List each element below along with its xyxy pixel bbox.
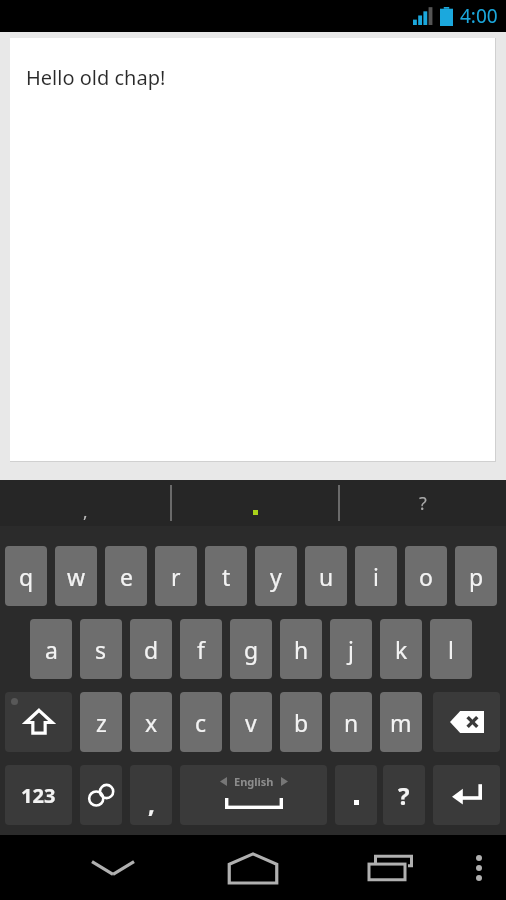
button[interactable]: ? — [383, 765, 425, 825]
button[interactable]: w — [55, 546, 97, 606]
button[interactable]: x — [130, 692, 172, 752]
staticText: k — [395, 634, 408, 665]
button[interactable]: h — [280, 619, 322, 679]
button[interactable]: q — [5, 546, 47, 606]
staticText: m — [390, 707, 412, 738]
staticText: h — [294, 634, 309, 665]
button[interactable]: j — [330, 619, 372, 679]
button[interactable]: e — [105, 546, 147, 606]
staticText: 4:00 — [460, 3, 498, 29]
button[interactable]: v — [230, 692, 272, 752]
staticText: q — [19, 561, 34, 592]
button[interactable]: a — [30, 619, 72, 679]
staticText: u — [319, 561, 334, 592]
button[interactable]: b — [280, 692, 322, 752]
button[interactable]: , — [0, 480, 170, 526]
staticText: ? — [419, 491, 427, 516]
staticText: English — [234, 774, 274, 789]
button[interactable]: s — [80, 619, 122, 679]
staticText: w — [67, 561, 86, 592]
staticText: x — [145, 707, 158, 738]
staticText: l — [448, 634, 454, 665]
staticText: g — [244, 634, 259, 665]
staticText: b — [294, 707, 309, 738]
button[interactable]: c — [180, 692, 222, 752]
staticText: j — [348, 634, 354, 665]
button[interactable]: f — [180, 619, 222, 679]
staticText: , — [148, 787, 155, 820]
button[interactable]: u — [305, 546, 347, 606]
staticText: e — [120, 561, 133, 592]
button[interactable] — [172, 480, 338, 526]
button[interactable]: g — [230, 619, 272, 679]
staticText: Hello old chap! — [26, 64, 166, 91]
button[interactable]: l — [430, 619, 472, 679]
staticText: ? — [398, 779, 410, 812]
button[interactable]: Shift — [5, 692, 72, 752]
button[interactable]: d — [130, 619, 172, 679]
staticText: c — [195, 707, 207, 738]
button[interactable]: , — [130, 765, 172, 825]
button[interactable]: 123 — [5, 765, 72, 825]
staticText: s — [95, 634, 107, 665]
button[interactable]: m — [380, 692, 422, 752]
button[interactable]: Recent apps — [358, 835, 428, 900]
staticText: r — [171, 561, 181, 592]
button[interactable]: Backspace — [433, 692, 500, 752]
staticText: p — [469, 561, 484, 592]
button[interactable]: Enter — [433, 765, 500, 825]
staticText: i — [373, 561, 379, 592]
button[interactable]: i — [355, 546, 397, 606]
staticText: , — [83, 500, 88, 523]
button[interactable]: y — [255, 546, 297, 606]
button[interactable]: ? — [340, 480, 506, 526]
button[interactable]: Home — [218, 835, 288, 900]
button[interactable]: o — [405, 546, 447, 606]
staticText: o — [419, 561, 433, 592]
staticText: y — [270, 561, 282, 592]
button[interactable]: z — [80, 692, 122, 752]
button[interactable]: t — [205, 546, 247, 606]
staticText: z — [96, 707, 107, 738]
button[interactable]: Space — [180, 765, 327, 825]
staticText: a — [45, 634, 58, 665]
button[interactable]: Hello old chap! — [10, 38, 495, 461]
staticText: t — [222, 561, 231, 592]
staticText: f — [197, 634, 205, 665]
button[interactable]: Emoji — [80, 765, 122, 825]
button[interactable]: r — [155, 546, 197, 606]
button[interactable]: k — [380, 619, 422, 679]
staticText: d — [144, 634, 159, 665]
staticText: n — [344, 707, 359, 738]
button[interactable]: n — [330, 692, 372, 752]
button[interactable] — [335, 765, 377, 825]
button[interactable]: More options — [452, 835, 506, 900]
button[interactable]: Hide keyboard — [78, 835, 148, 900]
staticText: 123 — [21, 782, 56, 809]
staticText: v — [245, 707, 257, 738]
button[interactable]: p — [455, 546, 497, 606]
